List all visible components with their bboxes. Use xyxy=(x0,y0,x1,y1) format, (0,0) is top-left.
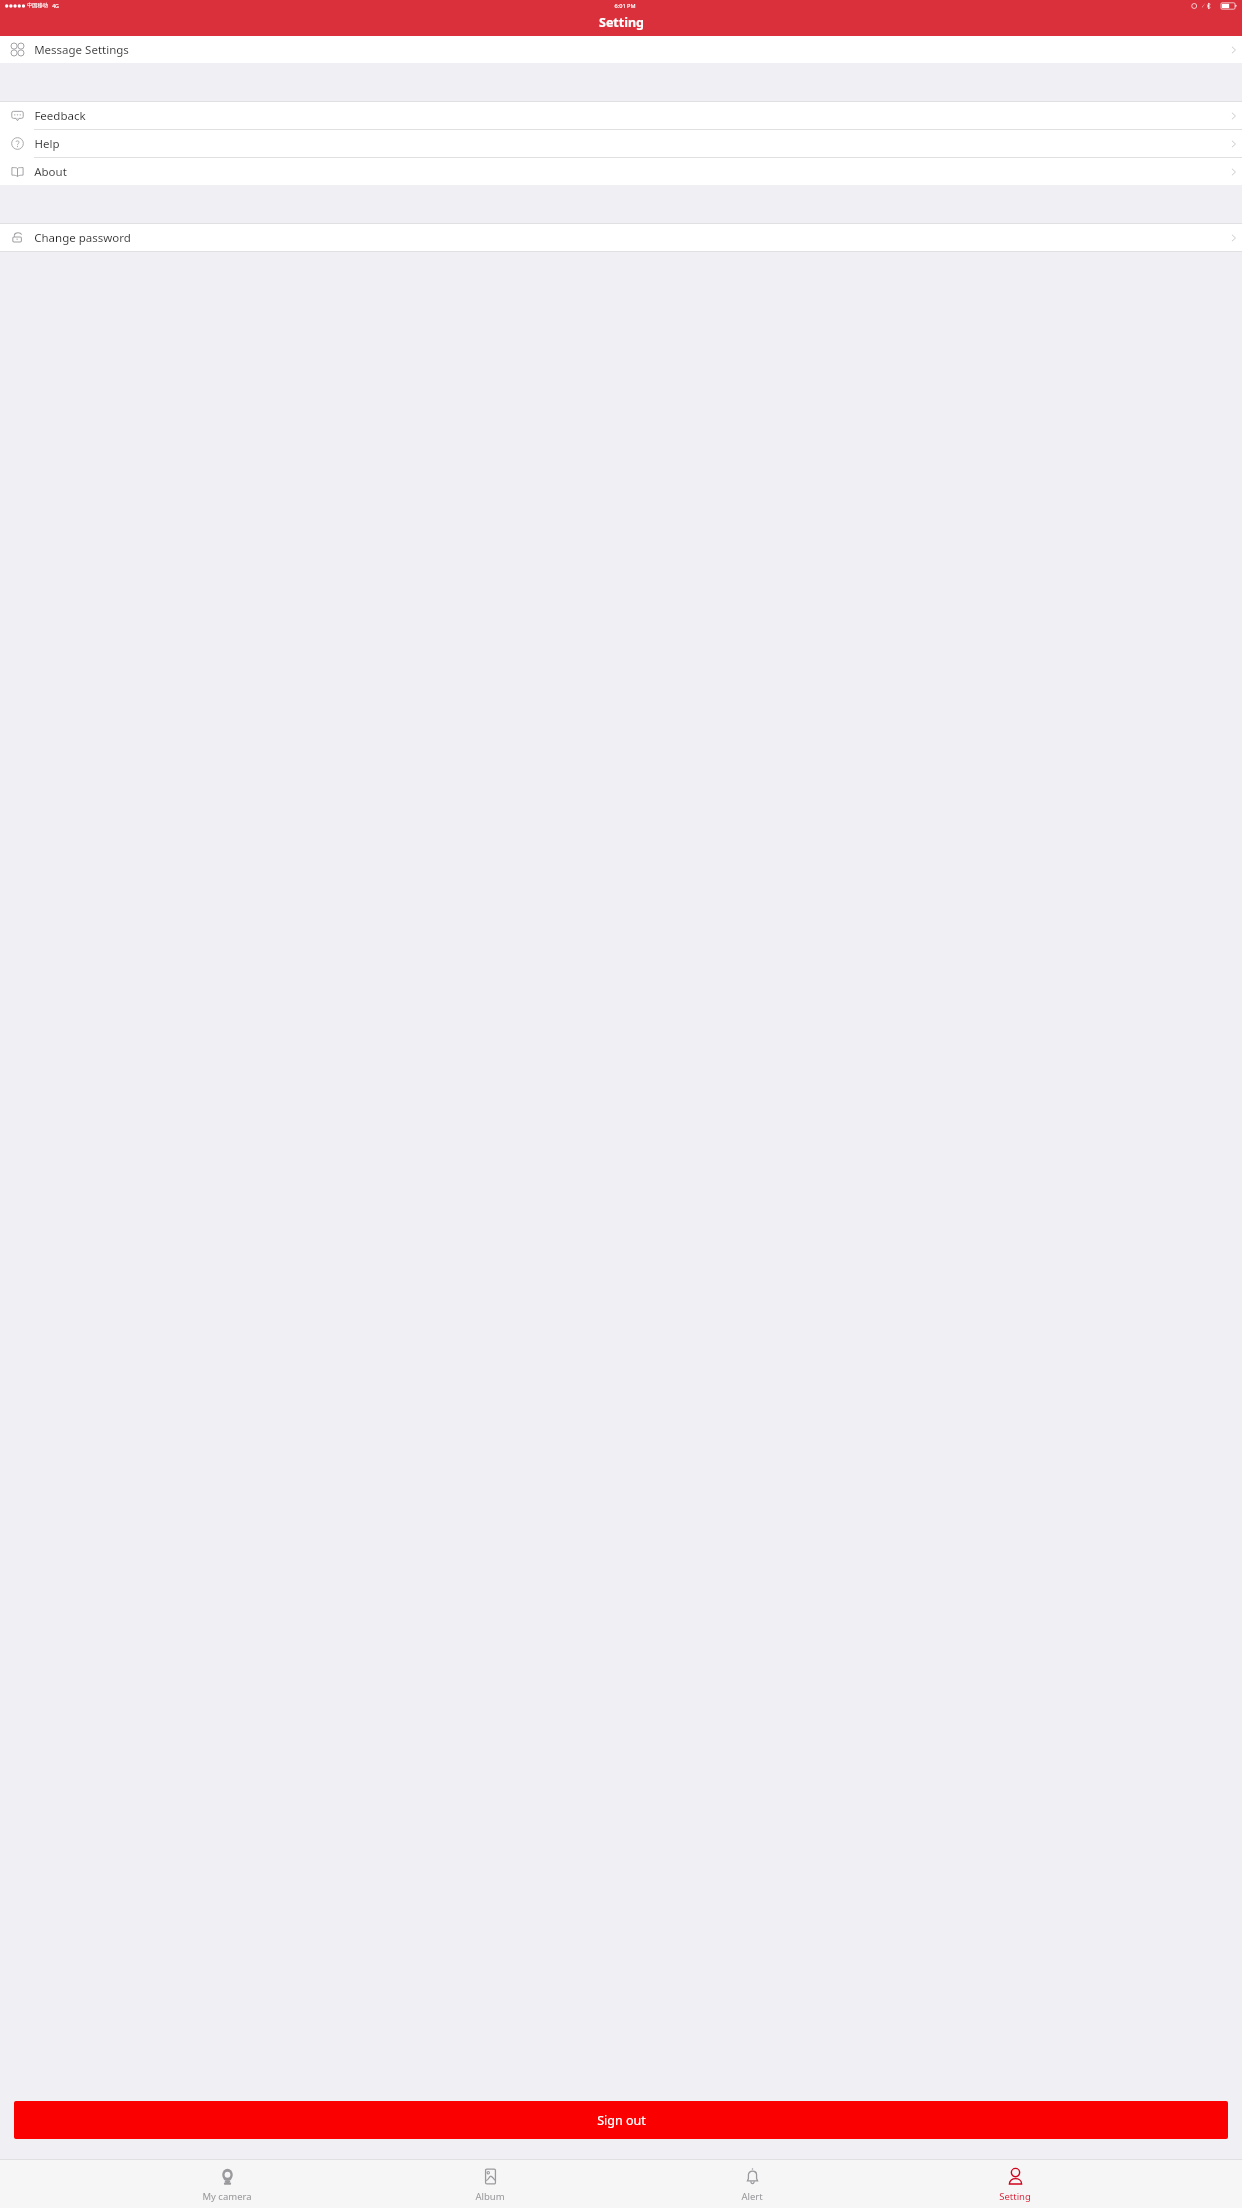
button[interactable]: My camera xyxy=(192,2160,262,2208)
button[interactable]: Album xyxy=(455,2160,525,2208)
staticText: Setting xyxy=(999,2190,1031,2203)
staticText: Alert xyxy=(741,2190,763,2203)
button[interactable]: Setting xyxy=(980,2160,1050,2208)
staticText: About xyxy=(34,164,67,180)
button[interactable]: Change password xyxy=(0,224,1242,251)
staticText: My camera xyxy=(202,2190,252,2203)
staticText: 4G xyxy=(52,2,59,9)
button[interactable]: Feedback xyxy=(0,102,1242,129)
staticText: Message Settings xyxy=(34,42,129,58)
staticText: Feedback xyxy=(34,108,86,124)
button[interactable]: Help xyxy=(0,130,1242,157)
staticText: 6:01 PM xyxy=(614,2,636,10)
staticText: Album xyxy=(475,2190,505,2203)
staticText: Change password xyxy=(34,230,131,246)
staticText: Sign out xyxy=(597,2112,646,2129)
button[interactable]: Message Settings xyxy=(0,36,1242,63)
button[interactable]: About xyxy=(0,158,1242,185)
button[interactable]: Sign out xyxy=(14,2101,1228,2139)
staticText: Setting xyxy=(599,14,644,31)
staticText: 中国移动 xyxy=(27,2,48,9)
staticText: Help xyxy=(34,136,60,152)
button[interactable]: Alert xyxy=(717,2160,787,2208)
